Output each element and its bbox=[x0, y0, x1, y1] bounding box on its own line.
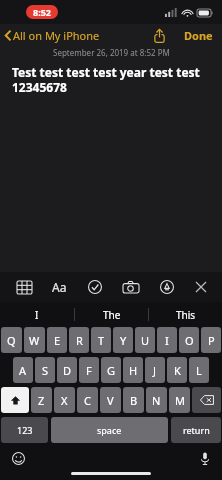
button[interactable]: K bbox=[167, 357, 187, 383]
button[interactable]: Camera bbox=[120, 277, 142, 297]
button[interactable]: Q bbox=[1, 327, 22, 353]
button[interactable]: F bbox=[79, 357, 99, 383]
button[interactable]: I bbox=[157, 327, 177, 353]
staticText: T bbox=[98, 333, 105, 348]
button[interactable]: Close keyboard bbox=[192, 277, 210, 297]
button[interactable]: Shift bbox=[1, 387, 29, 413]
button[interactable]: U bbox=[135, 327, 155, 353]
staticText: N bbox=[152, 393, 161, 408]
button[interactable]: X bbox=[54, 387, 75, 413]
button[interactable]: Done bbox=[181, 26, 216, 45]
button[interactable]: All on My iPhone bbox=[0, 25, 106, 46]
staticText: B bbox=[130, 393, 138, 408]
staticText: Done bbox=[184, 28, 213, 43]
button[interactable]: Table bbox=[14, 277, 35, 298]
staticText: V bbox=[107, 393, 114, 408]
button[interactable]: N bbox=[146, 387, 167, 413]
button[interactable]: C bbox=[77, 387, 98, 413]
button[interactable]: Y bbox=[113, 327, 133, 353]
staticText: J bbox=[153, 363, 157, 378]
staticText: W bbox=[29, 333, 40, 348]
button[interactable]: J bbox=[145, 357, 165, 383]
button[interactable]: E bbox=[47, 327, 67, 353]
staticText: M bbox=[175, 393, 185, 408]
staticText: O bbox=[185, 333, 194, 348]
button[interactable]: This bbox=[149, 302, 222, 327]
staticText: D bbox=[63, 363, 72, 378]
staticText: I bbox=[35, 308, 39, 322]
staticText: S bbox=[42, 363, 49, 378]
staticText: Z bbox=[38, 393, 45, 408]
staticText: This bbox=[176, 308, 196, 322]
button[interactable]: V bbox=[100, 387, 121, 413]
button[interactable]: A bbox=[13, 357, 33, 383]
button[interactable]: Markup bbox=[157, 276, 177, 298]
button[interactable]: H bbox=[123, 357, 143, 383]
button[interactable]: L bbox=[189, 357, 209, 383]
staticText: P bbox=[208, 333, 215, 348]
staticText: The bbox=[103, 308, 121, 322]
button[interactable]: I bbox=[0, 302, 74, 327]
staticText: U bbox=[141, 333, 150, 348]
button[interactable]: M bbox=[169, 387, 190, 413]
button[interactable]: 123 bbox=[1, 417, 48, 443]
staticText: X bbox=[61, 393, 68, 408]
staticText: space bbox=[97, 424, 122, 436]
button[interactable]: G bbox=[101, 357, 121, 383]
button[interactable]: Dictation bbox=[197, 449, 213, 468]
staticText: A bbox=[19, 363, 27, 378]
staticText: R bbox=[76, 333, 83, 348]
button[interactable]: return bbox=[171, 417, 221, 443]
staticText: Aa bbox=[52, 279, 67, 295]
button[interactable]: Z bbox=[31, 387, 52, 413]
button[interactable]: The bbox=[75, 302, 148, 327]
button[interactable]: B bbox=[123, 387, 144, 413]
staticText: All on My iPhone bbox=[13, 28, 100, 43]
staticText: K bbox=[174, 363, 181, 378]
staticText: Y bbox=[120, 333, 127, 348]
button[interactable]: D bbox=[57, 357, 77, 383]
button[interactable]: Emoji bbox=[9, 449, 28, 468]
button[interactable]: Checklist bbox=[85, 276, 105, 298]
button[interactable]: Test test test test year test test 12345… bbox=[0, 62, 222, 97]
button[interactable]: S bbox=[35, 357, 55, 383]
button[interactable]: P bbox=[201, 327, 221, 353]
staticText: G bbox=[107, 363, 116, 378]
button[interactable]: R bbox=[69, 327, 89, 353]
staticText: Q bbox=[7, 333, 16, 348]
staticText: 123 bbox=[17, 424, 33, 436]
button[interactable]: W bbox=[24, 327, 45, 353]
staticText: H bbox=[129, 363, 138, 378]
staticText: F bbox=[86, 363, 92, 378]
button[interactable]: Backspace bbox=[192, 387, 221, 413]
staticText: Test test test test year test test 12345… bbox=[12, 64, 200, 95]
staticText: C bbox=[84, 393, 91, 408]
staticText: return bbox=[183, 424, 210, 436]
staticText: I bbox=[165, 333, 169, 348]
button[interactable]: O bbox=[179, 327, 199, 353]
staticText: September 26, 2019 at 8:52 PM bbox=[53, 47, 170, 58]
staticText: E bbox=[54, 333, 61, 348]
button[interactable]: Share bbox=[150, 27, 169, 45]
button[interactable]: Text format bbox=[49, 275, 70, 299]
staticText: L bbox=[196, 363, 202, 378]
button[interactable]: T bbox=[91, 327, 111, 353]
button[interactable]: space bbox=[51, 417, 168, 443]
staticText: 8:52 bbox=[33, 6, 51, 18]
